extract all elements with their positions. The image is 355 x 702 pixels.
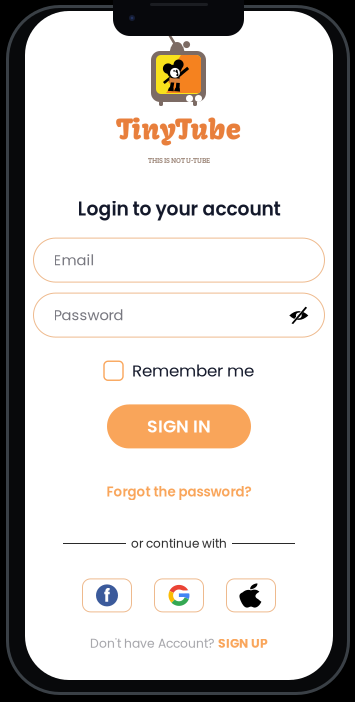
staticText: Remember me bbox=[132, 359, 254, 382]
staticText: Don't have Account? bbox=[90, 635, 214, 652]
staticText: or continue with bbox=[131, 535, 227, 552]
button[interactable]: SIGN IN bbox=[107, 404, 251, 448]
staticText: TinyTube bbox=[116, 112, 241, 147]
button[interactable]: Show password bbox=[288, 306, 309, 324]
button[interactable]: SIGN UP bbox=[218, 635, 268, 652]
button[interactable]: Continue with Facebook bbox=[82, 579, 131, 612]
staticText: SIGN UP bbox=[218, 635, 268, 652]
button[interactable]: Remember me bbox=[104, 359, 254, 382]
staticText: Login to your account bbox=[77, 196, 280, 222]
button[interactable]: Continue with Google bbox=[154, 579, 203, 612]
staticText: f bbox=[104, 584, 110, 607]
staticText: THIS IS NOT U-TUBE bbox=[148, 155, 210, 165]
staticText: Email bbox=[53, 250, 94, 270]
button[interactable]: Continue with Apple bbox=[226, 579, 275, 612]
staticText: Password bbox=[53, 305, 123, 325]
button[interactable]: Forgot the password? bbox=[106, 482, 251, 501]
staticText: Forgot the password? bbox=[106, 482, 251, 501]
staticText: SIGN IN bbox=[147, 414, 211, 439]
